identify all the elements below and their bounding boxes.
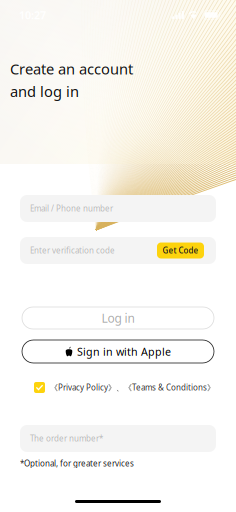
staticText: Enter verification code	[30, 245, 115, 256]
staticText: Create an account	[10, 59, 133, 78]
staticText: 10:27	[19, 8, 46, 22]
button[interactable]: Agree to the privacy policy and terms	[34, 382, 45, 393]
staticText: *Optional, for greater services	[20, 458, 134, 469]
staticText: 《Privacy Policy》、《Teams & Conditions》	[50, 382, 215, 393]
staticText: Email / Phone number	[30, 203, 113, 214]
button[interactable]: Log in	[22, 307, 214, 329]
staticText: Get Code	[162, 245, 198, 256]
staticText: The order number*	[30, 433, 103, 444]
button[interactable]: Get Code	[157, 242, 204, 258]
staticText: Log in	[101, 310, 134, 326]
staticText: Sign in with Apple	[77, 344, 171, 359]
button[interactable]: Sign in with Apple	[22, 340, 214, 363]
staticText: and log in	[10, 81, 79, 101]
